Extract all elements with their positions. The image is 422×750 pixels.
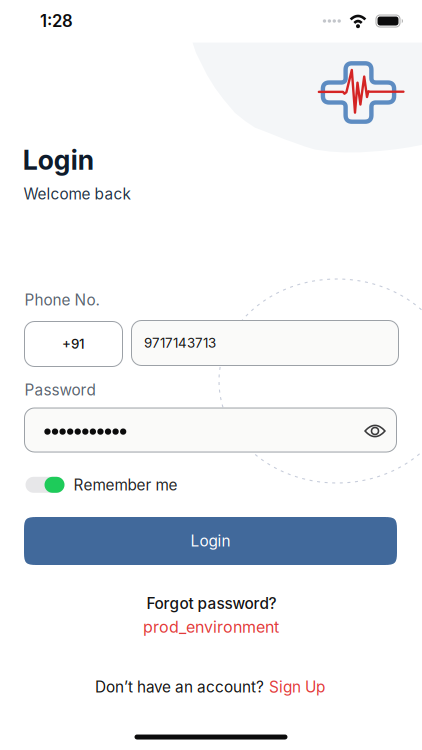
staticText: Don’t have an account? — [95, 678, 264, 696]
button[interactable]: Show password — [357, 413, 393, 449]
staticText: Login — [190, 532, 230, 550]
staticText: Login — [23, 144, 94, 176]
button[interactable]: Don’t have an account? — [95, 678, 325, 696]
staticText: Phone No. — [24, 291, 99, 309]
button[interactable]: Login — [24, 517, 397, 565]
staticText: prod_environment — [143, 617, 279, 637]
staticText: Sign Up — [269, 678, 325, 696]
staticText: +91 — [62, 336, 85, 352]
button[interactable]: prod_environment — [143, 617, 279, 637]
button[interactable]: Remember me — [25, 475, 177, 494]
staticText: Forgot password? — [146, 594, 276, 613]
staticText: 9717143713 — [144, 335, 216, 351]
button[interactable]: Forgot password? — [146, 594, 276, 613]
staticText: Welcome back — [23, 185, 130, 203]
staticText: Password — [24, 381, 95, 399]
staticText: 1:28 — [40, 11, 73, 31]
staticText: Remember me — [73, 475, 177, 494]
